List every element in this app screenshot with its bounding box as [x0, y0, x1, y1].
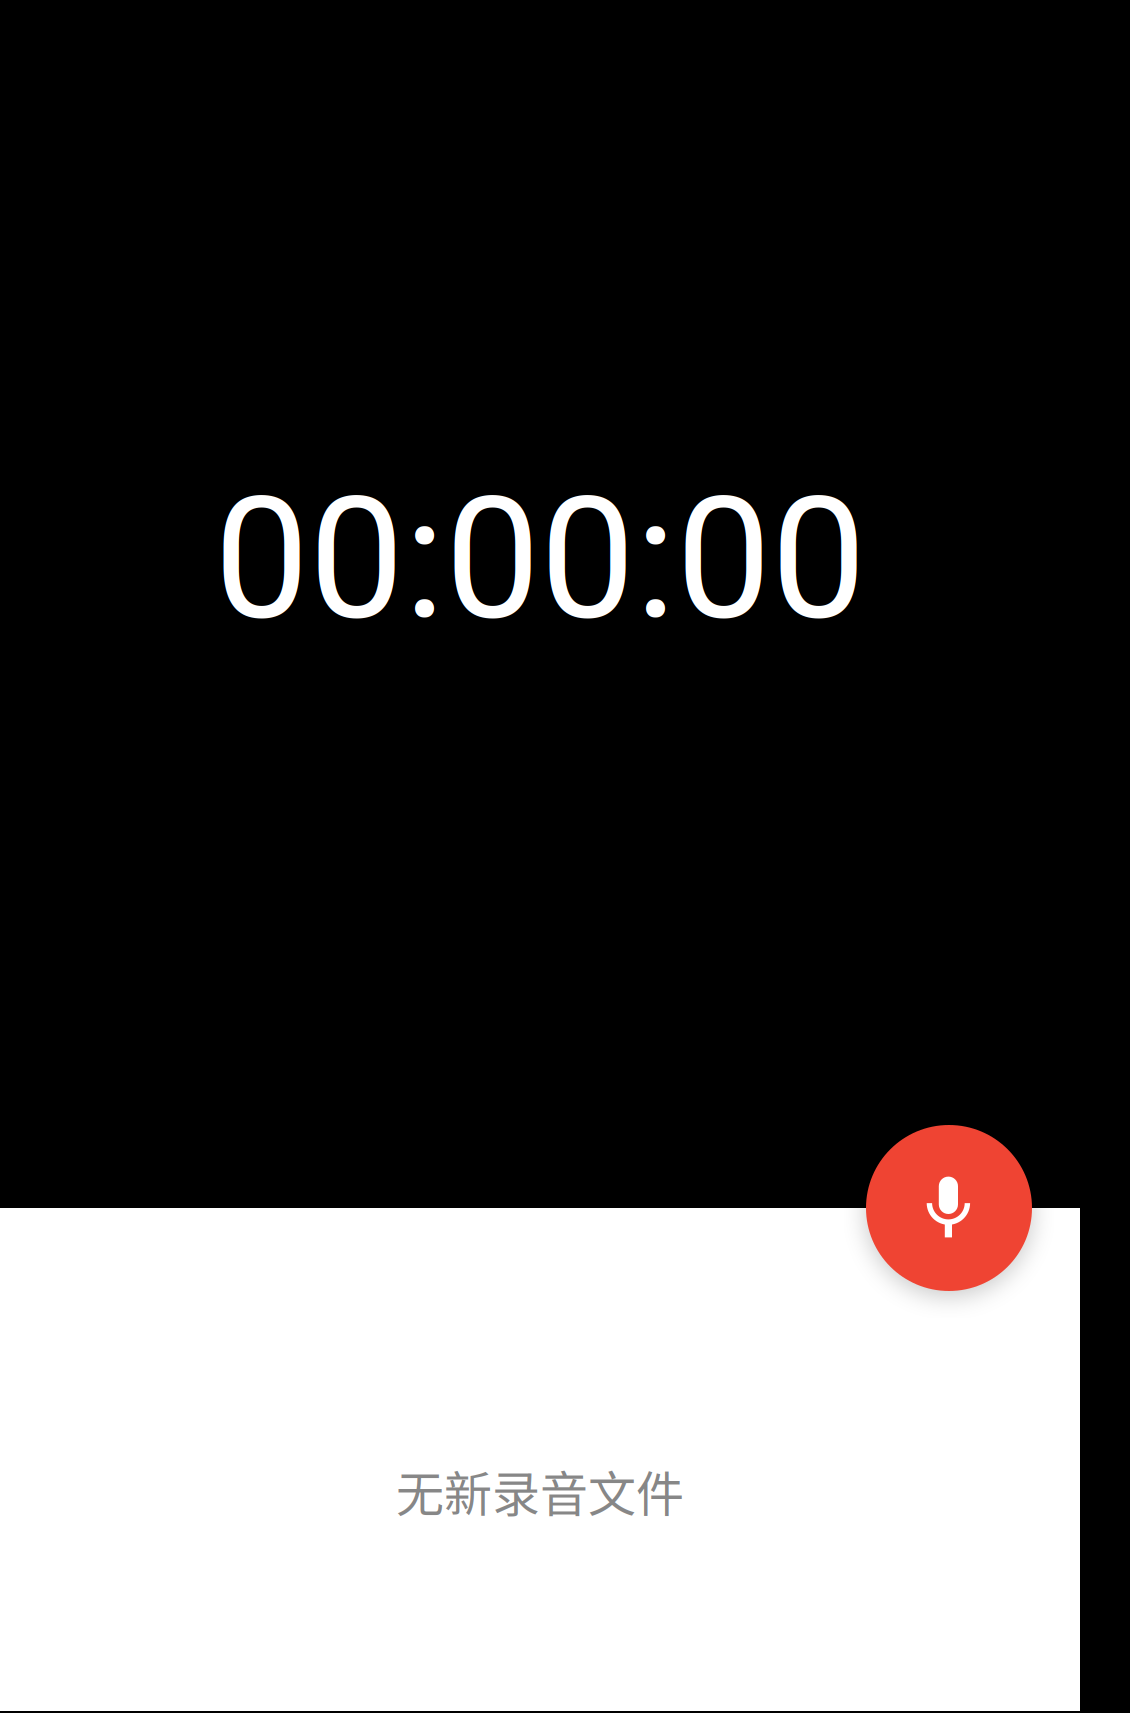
- staticText: 00:00:00: [214, 459, 866, 658]
- staticText: 无新录音文件: [396, 1456, 684, 1525]
- button[interactable]: Record: [866, 1125, 1032, 1291]
